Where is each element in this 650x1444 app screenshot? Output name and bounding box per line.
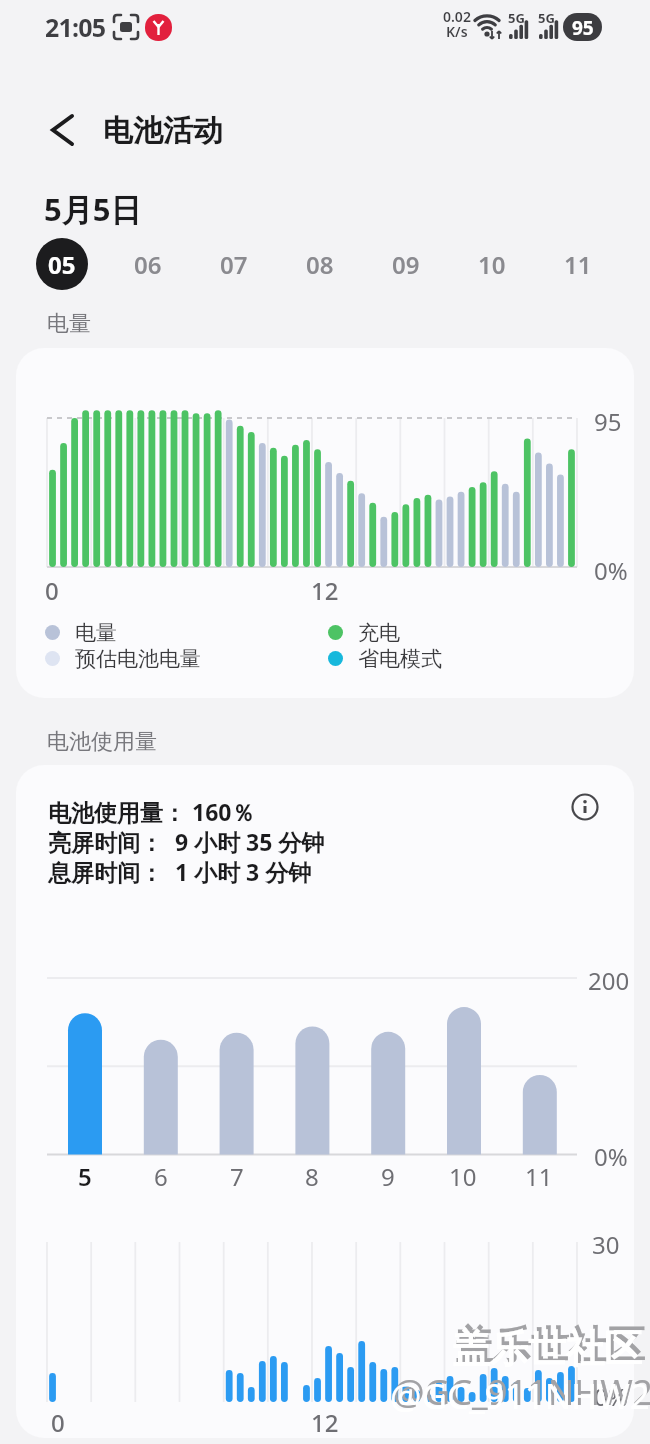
staticText: 电量 (47, 310, 91, 338)
button[interactable]: 06 (122, 238, 174, 290)
staticText: 0 (45, 574, 59, 607)
staticText: 200 (588, 964, 630, 997)
staticText: 05 (48, 248, 76, 281)
staticText: 电量 (75, 620, 117, 646)
staticText: 21:05 (45, 10, 106, 44)
staticText: 12 (311, 574, 339, 607)
button[interactable]: 11 (552, 238, 604, 290)
staticText: 30 (592, 1228, 620, 1261)
button[interactable]: 10 (466, 238, 518, 290)
staticText: 盖乐世社区 (455, 1321, 645, 1369)
staticText: 06 (134, 248, 162, 281)
staticText: 5 (78, 1160, 92, 1193)
staticText: 0% (594, 554, 628, 587)
staticText: 08 (306, 248, 334, 281)
staticText: 预估电池电量 (75, 646, 201, 672)
button[interactable]: 05 (36, 238, 88, 290)
staticText: 9 (381, 1160, 395, 1193)
staticText: K/s (446, 22, 468, 41)
staticText: 95 (594, 405, 622, 438)
button[interactable] (566, 788, 604, 826)
staticText: 电池使用量 (47, 728, 157, 756)
button[interactable]: 07 (208, 238, 260, 290)
staticText: 5月5日 (44, 188, 142, 230)
staticText: 亮屏时间： 9 小时 35 分钟 (48, 826, 325, 857)
button[interactable]: 08 (294, 238, 346, 290)
staticText: 0% (594, 1140, 628, 1173)
staticText: 8 (305, 1160, 319, 1193)
staticText: 充电 (358, 620, 400, 646)
staticText: 电池活动 (103, 112, 223, 150)
staticText: 95 (572, 15, 594, 41)
staticText: @GC_911NHW2 (393, 1368, 650, 1416)
staticText: 0 (51, 1406, 65, 1439)
staticText: 电池使用量： 160％ (48, 796, 255, 827)
staticText: 09 (392, 248, 420, 281)
button[interactable]: 09 (380, 238, 432, 290)
staticText: 10 (449, 1160, 477, 1193)
staticText: 7 (230, 1160, 244, 1193)
staticText: 5G (508, 9, 525, 27)
staticText: 07 (220, 248, 248, 281)
staticText: 12 (311, 1406, 339, 1439)
staticText: 5G (538, 9, 555, 27)
staticText: 10 (478, 248, 506, 281)
button[interactable] (36, 104, 88, 156)
staticText: 0% (594, 1380, 628, 1413)
staticText: 11 (525, 1160, 553, 1193)
staticText: 息屏时间： 1 小时 3 分钟 (48, 856, 312, 887)
staticText: @GC_911NHW2 (390, 1372, 650, 1420)
staticText: 盖乐世社区 (452, 1325, 642, 1373)
staticText: 6 (154, 1160, 168, 1193)
staticText: 0.02 (443, 7, 471, 26)
staticText: 省电模式 (358, 646, 442, 672)
staticText: 11 (564, 248, 592, 281)
